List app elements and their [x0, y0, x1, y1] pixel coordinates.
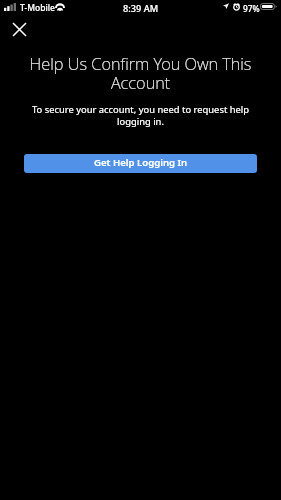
button[interactable]: Close	[3, 13, 35, 45]
staticText: To secure your account, you need to requ…	[14, 103, 267, 128]
staticText: Help Us Confirm You Own This Account	[16, 52, 265, 94]
staticText: 97%	[243, 3, 260, 14]
staticText: 8:39 AM	[123, 2, 159, 15]
staticText: T-Mobile	[20, 2, 55, 14]
button[interactable]: Get Help Logging In	[24, 154, 257, 173]
staticText: Get Help Logging In	[94, 156, 188, 169]
